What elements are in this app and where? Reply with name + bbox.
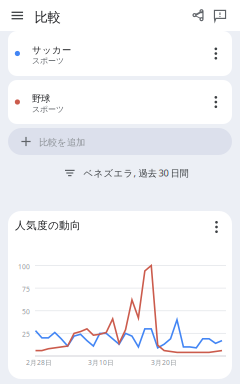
button[interactable]: ベネズエラ, 過去 30 日間 [65, 163, 195, 183]
button[interactable]: Send feedback [209, 4, 231, 26]
staticText: スポーツ [32, 56, 64, 66]
button[interactable]: Share [187, 4, 209, 26]
button[interactable]: サッカー [8, 31, 232, 76]
staticText: 2月28日 [26, 358, 52, 367]
button[interactable]: 比較を追加 [8, 128, 232, 155]
button[interactable]: More options [206, 217, 226, 237]
button[interactable]: 野球 [8, 80, 232, 124]
staticText: 75 [22, 285, 30, 294]
staticText: 3月10日 [88, 358, 114, 367]
staticText: スポーツ [32, 104, 64, 114]
staticText: 50 [22, 307, 30, 316]
staticText: 3月20日 [151, 358, 177, 367]
staticText: ベネズエラ, 過去 30 日間 [84, 167, 189, 179]
staticText: 比較を追加 [39, 137, 85, 148]
staticText: サッカー [32, 44, 71, 56]
staticText: 野球 [32, 93, 50, 104]
staticText: 100 [18, 262, 30, 271]
staticText: 比較 [34, 9, 60, 25]
staticText: 人気度の動向 [15, 219, 81, 232]
staticText: 25 [22, 330, 30, 339]
button[interactable]: Menu [5, 3, 29, 27]
